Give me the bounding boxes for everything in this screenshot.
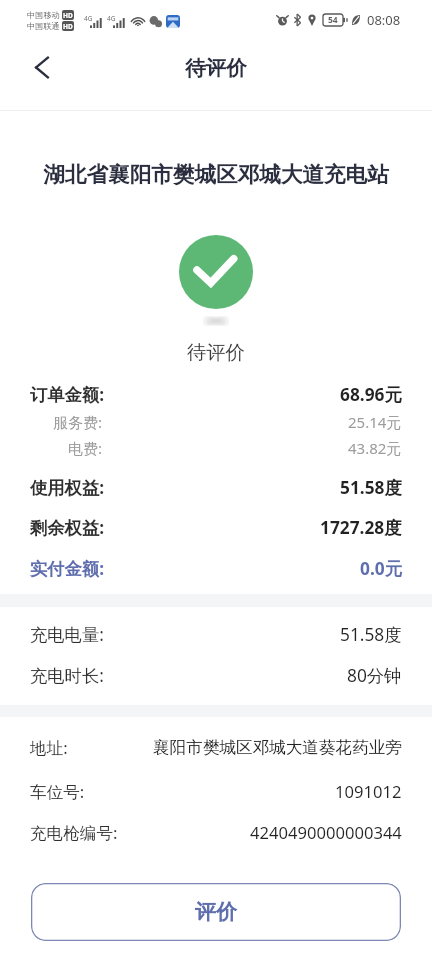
- staticText: 订单金额:: [30, 383, 105, 407]
- staticText: 80分钟: [347, 664, 402, 688]
- button[interactable]: 充电枪编号:: [0, 815, 432, 849]
- staticText: 0.0元: [360, 557, 402, 581]
- staticText: 使用权益:: [30, 476, 105, 500]
- button[interactable]: 电费:: [0, 431, 432, 465]
- staticText: 51.58度: [340, 476, 402, 500]
- staticText: 中国移动: [27, 10, 60, 20]
- staticText: 08:08: [367, 11, 401, 29]
- staticText: HD: [63, 11, 73, 20]
- staticText: 待评价: [187, 340, 245, 364]
- button[interactable]: 地址:: [0, 730, 432, 764]
- button[interactable]: 实付金额:: [0, 552, 432, 586]
- staticText: 25.14元: [348, 412, 402, 432]
- staticText: 待评价: [185, 55, 247, 81]
- staticText: 4G: [84, 14, 93, 23]
- staticText: 襄阳市樊城区邓城大道葵花药业旁: [153, 737, 402, 758]
- staticText: 1091012: [335, 780, 402, 803]
- staticText: 电费:: [68, 438, 103, 458]
- button[interactable]: 订单金额:: [0, 378, 432, 412]
- staticText: 车位号:: [30, 780, 85, 803]
- staticText: 评价: [195, 899, 237, 925]
- staticText: 68.96元: [340, 383, 402, 407]
- button[interactable]: Back: [24, 53, 54, 83]
- button[interactable]: 剩余权益:: [0, 511, 432, 545]
- button[interactable]: 充电时长:: [0, 659, 432, 693]
- button[interactable]: 评价: [31, 883, 401, 941]
- staticText: 4240490000000344: [250, 821, 402, 844]
- staticText: 剩余权益:: [30, 516, 105, 540]
- staticText: 51.58度: [340, 623, 402, 647]
- staticText: 充电电量:: [30, 623, 104, 647]
- staticText: 湖北省襄阳市樊城区邓城大道充电站: [14, 161, 418, 188]
- button[interactable]: 充电电量:: [0, 618, 432, 652]
- staticText: 充电时长:: [30, 664, 104, 688]
- staticText: HD: [63, 22, 73, 31]
- staticText: 服务费:: [53, 412, 103, 432]
- button[interactable]: 车位号:: [0, 774, 432, 808]
- staticText: 实付金额:: [30, 557, 105, 581]
- staticText: 54: [328, 14, 338, 26]
- button[interactable]: 服务费:: [0, 405, 432, 439]
- button[interactable]: 使用权益:: [0, 471, 432, 505]
- staticText: 4G: [107, 14, 116, 23]
- staticText: 43.82元: [348, 438, 402, 458]
- staticText: 地址:: [30, 736, 68, 759]
- staticText: 充电枪编号:: [30, 821, 118, 844]
- staticText: 1727.28度: [320, 516, 402, 540]
- staticText: 中国联通: [27, 21, 60, 31]
